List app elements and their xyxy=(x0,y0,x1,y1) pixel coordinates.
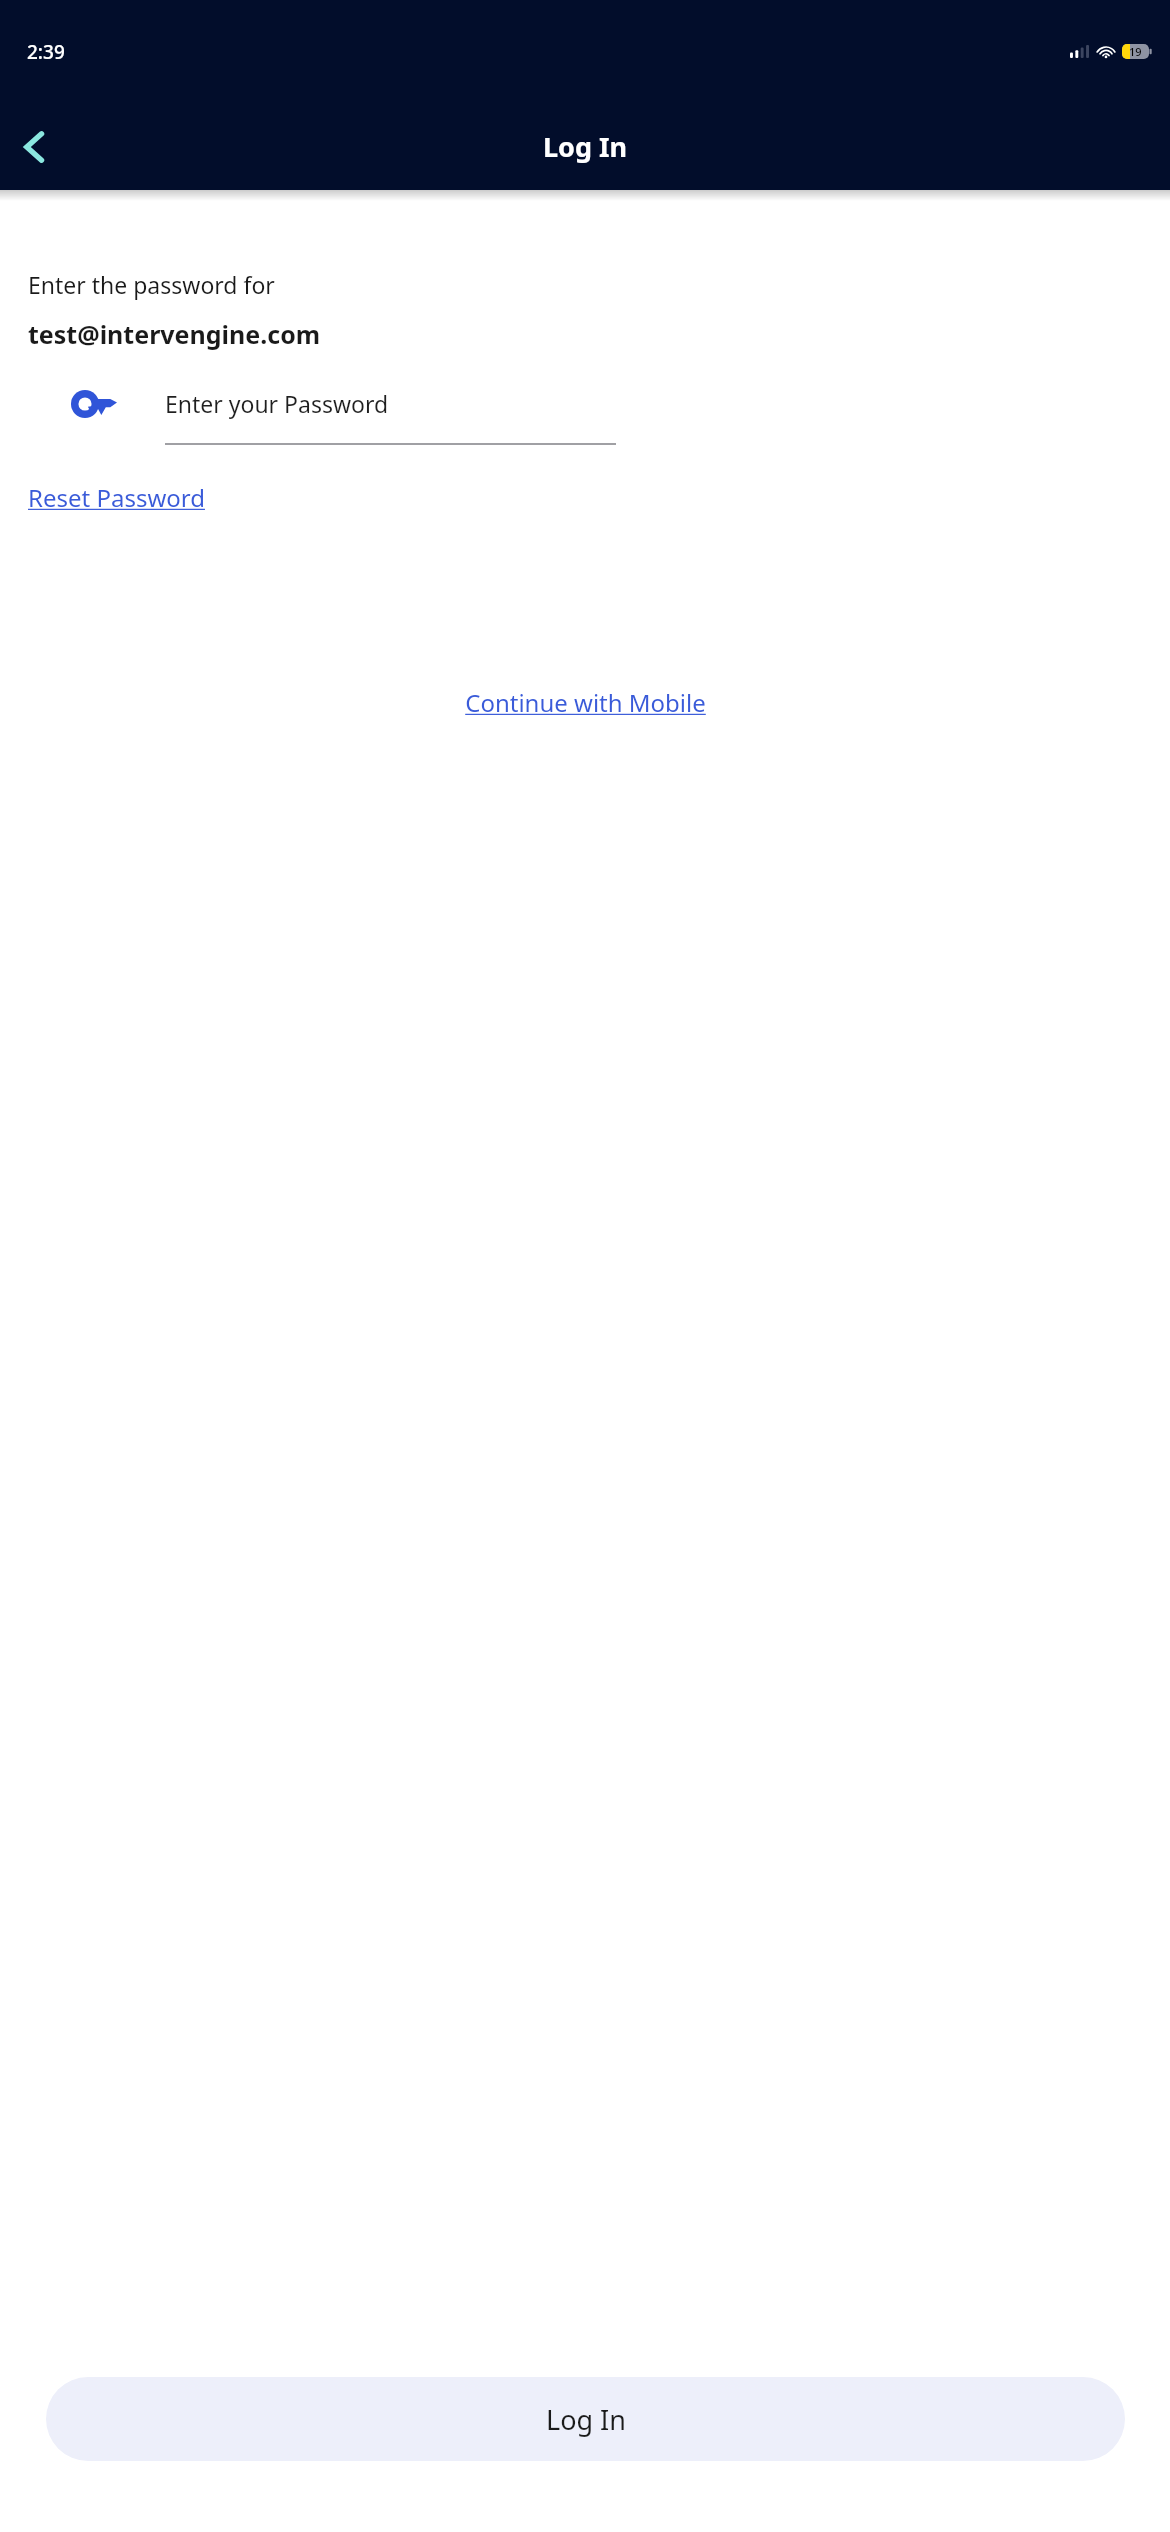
staticText: Continue with Mobile xyxy=(465,686,706,719)
button[interactable]: Enter your Password xyxy=(165,381,616,425)
staticText: Log In xyxy=(543,128,628,165)
staticText: test@intervengine.com xyxy=(28,317,321,351)
staticText: 2:39 xyxy=(27,39,65,65)
staticText: Enter your Password xyxy=(165,388,389,419)
button[interactable]: Back xyxy=(8,121,60,173)
button[interactable]: Continue with Mobile xyxy=(465,686,706,719)
staticText: Reset Password xyxy=(28,481,205,514)
staticText: Log In xyxy=(546,2401,626,2438)
staticText: 19 xyxy=(1129,44,1142,59)
staticText: Enter the password for xyxy=(28,269,275,300)
button[interactable]: Log In xyxy=(46,2377,1125,2461)
button[interactable]: Reset Password xyxy=(28,481,205,514)
